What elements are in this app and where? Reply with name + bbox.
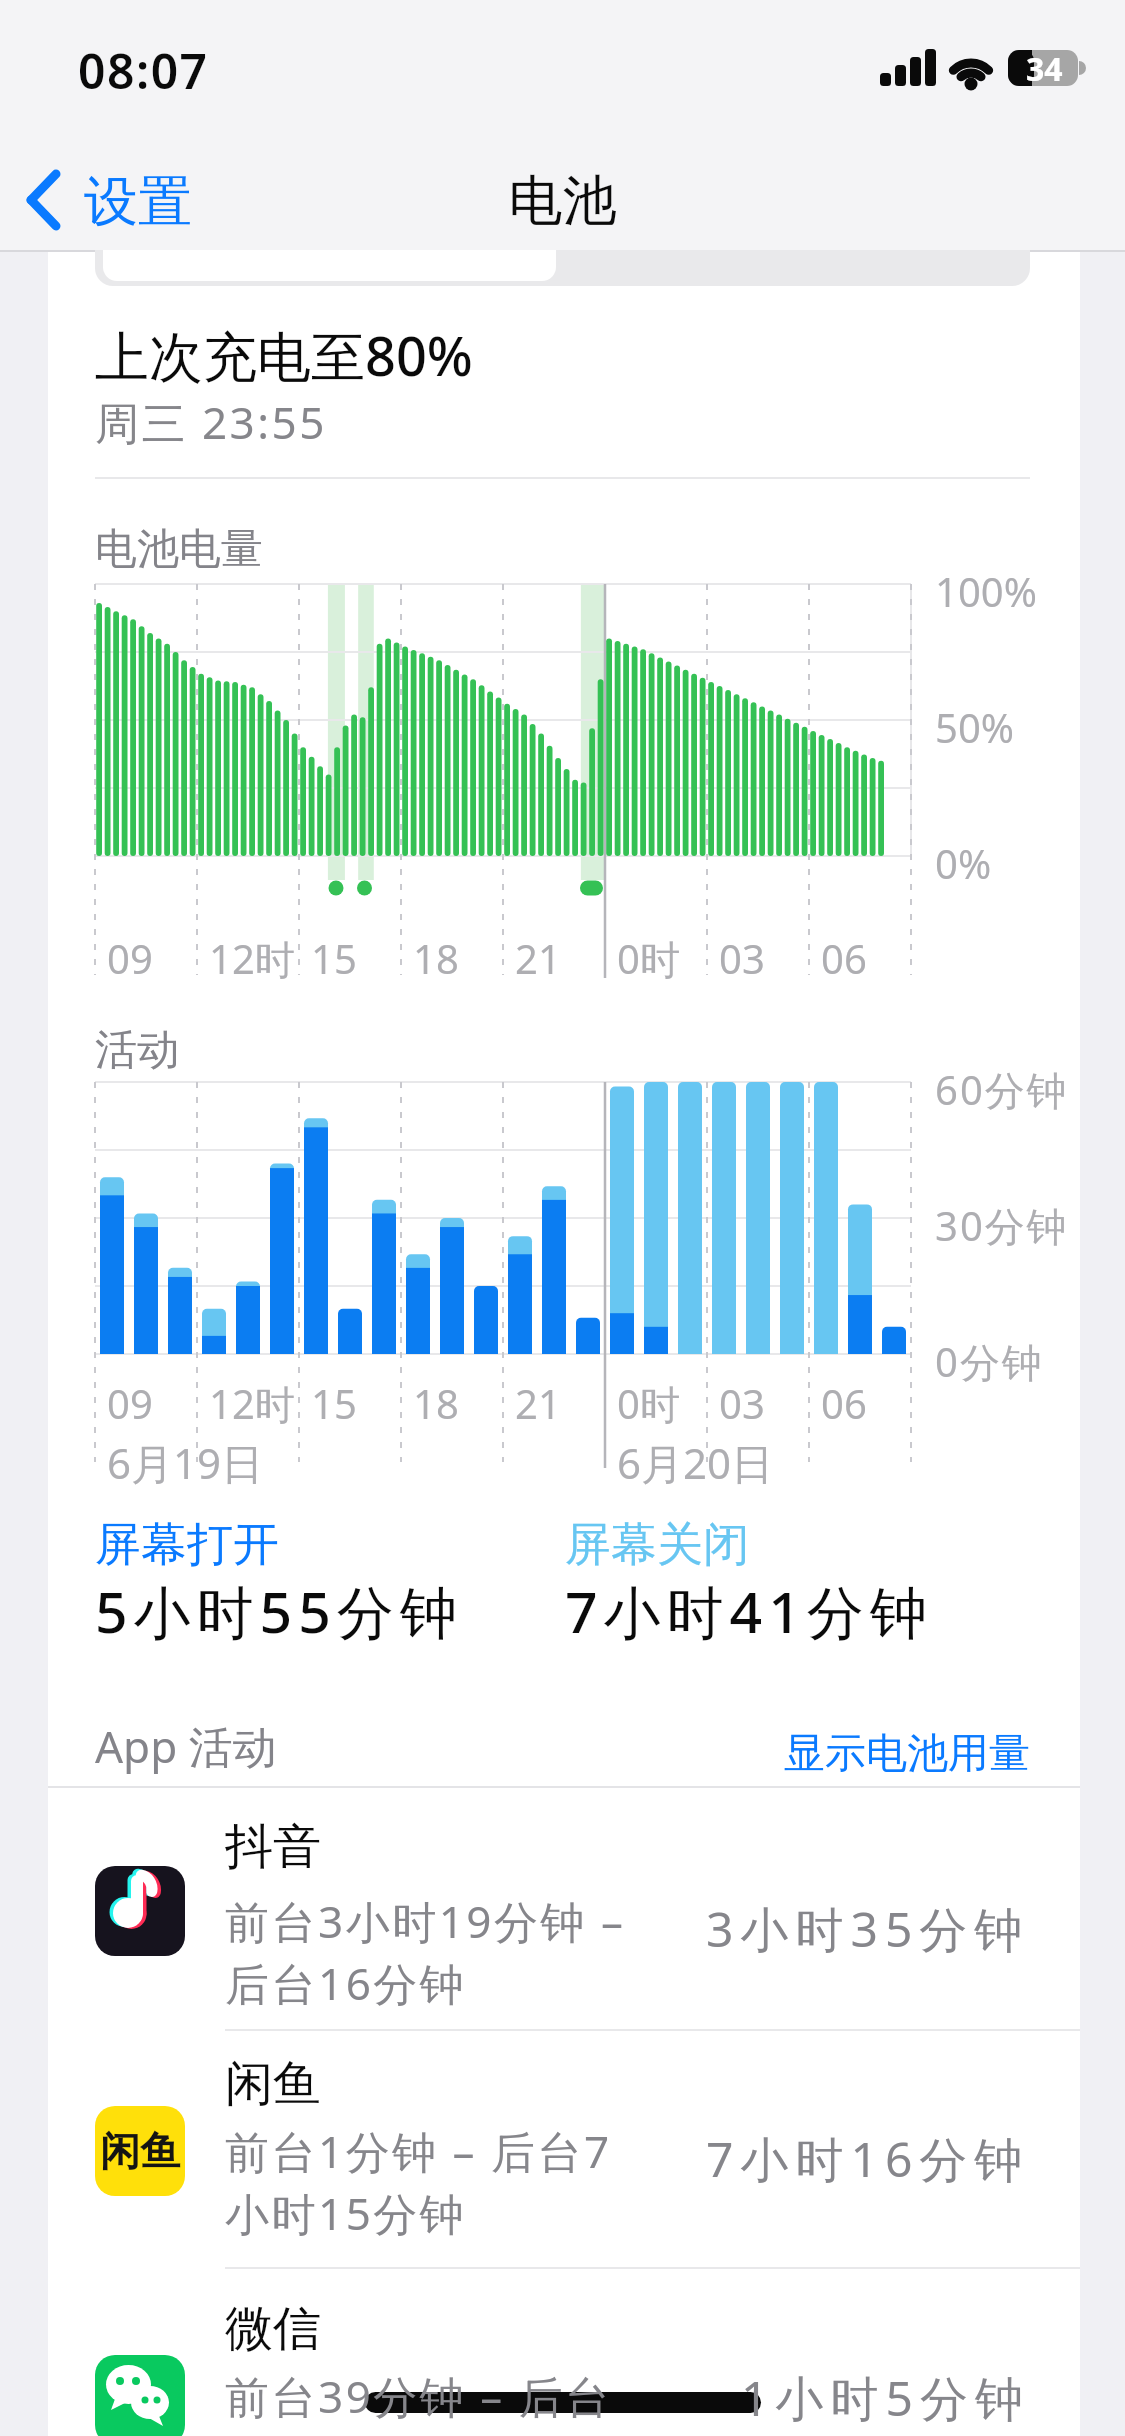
staticText: 08:07 xyxy=(78,38,209,103)
staticText: 周三 23:55 xyxy=(95,392,327,452)
staticText: 1小时5分钟 xyxy=(741,2365,1030,2431)
staticText: 6月19日 xyxy=(107,1434,264,1491)
staticText: 3小时35分钟 xyxy=(706,1896,1030,1962)
staticText: 抖音 xyxy=(225,1817,321,1877)
staticText: 21 xyxy=(515,931,561,985)
staticText: 屏幕关闭 xyxy=(565,1516,749,1574)
staticText: 03 xyxy=(719,1376,765,1430)
staticText: 活动 xyxy=(95,1024,179,1077)
staticText: 5小时55分钟 xyxy=(95,1572,463,1650)
button[interactable]: 闲鱼 xyxy=(48,2031,1080,2269)
staticText: 电池电量 xyxy=(95,523,263,576)
staticText: 微信 xyxy=(225,2299,321,2359)
staticText: App 活动 xyxy=(95,1716,277,1776)
button[interactable]: 微信 xyxy=(48,2269,1080,2436)
staticText: 09 xyxy=(107,1376,153,1430)
staticText: 30分钟 xyxy=(935,1198,1069,1253)
staticText: 闲鱼 xyxy=(225,2054,321,2114)
staticText: 15 xyxy=(311,1376,357,1430)
staticText: 60分钟 xyxy=(935,1062,1069,1117)
staticText: 前台1分钟 – 后台7 xyxy=(225,2121,612,2181)
staticText: 100% xyxy=(935,564,1037,618)
staticText: 屏幕打开 xyxy=(95,1516,279,1574)
staticText: 后台16分钟 xyxy=(225,1953,467,2013)
staticText: 12时 xyxy=(209,931,295,986)
staticText: 前台39分钟 – 后台 xyxy=(225,2366,612,2426)
staticText: 0时 xyxy=(617,931,680,986)
staticText: 50% xyxy=(935,700,1014,754)
button[interactable]: 设置 xyxy=(20,160,200,240)
staticText: 0% xyxy=(935,836,992,890)
staticText: 7小时41分钟 xyxy=(565,1572,933,1650)
staticText: 12时 xyxy=(209,1376,295,1431)
button[interactable]: 抖音 xyxy=(48,1790,1080,2030)
staticText: 上次充电至80% xyxy=(95,318,473,392)
staticText: 09 xyxy=(107,931,153,985)
staticText: 06 xyxy=(821,1376,867,1430)
staticText: 18 xyxy=(413,1376,459,1430)
staticText: 6月20日 xyxy=(617,1434,774,1491)
staticText: 06 xyxy=(821,931,867,985)
staticText: 18 xyxy=(413,931,459,985)
staticText: 03 xyxy=(719,931,765,985)
staticText: 34 xyxy=(1026,47,1063,91)
button[interactable] xyxy=(95,250,1030,286)
staticText: 闲鱼 xyxy=(100,2126,180,2176)
staticText: 前台3小时19分钟 – xyxy=(225,1891,626,1951)
staticText: 显示电池用量 xyxy=(784,1728,1030,1780)
staticText: 小时15分钟 xyxy=(225,2183,467,2243)
staticText: 0分钟 xyxy=(935,1334,1044,1389)
button[interactable]: 显示电池用量 xyxy=(770,1722,1040,1786)
staticText: 15 xyxy=(311,931,357,985)
staticText: 7小时16分钟 xyxy=(706,2126,1030,2192)
staticText: 设置 xyxy=(84,168,192,236)
staticText: 电池 xyxy=(0,167,1125,235)
staticText: 0时 xyxy=(617,1376,680,1431)
staticText: 21 xyxy=(515,1376,561,1430)
